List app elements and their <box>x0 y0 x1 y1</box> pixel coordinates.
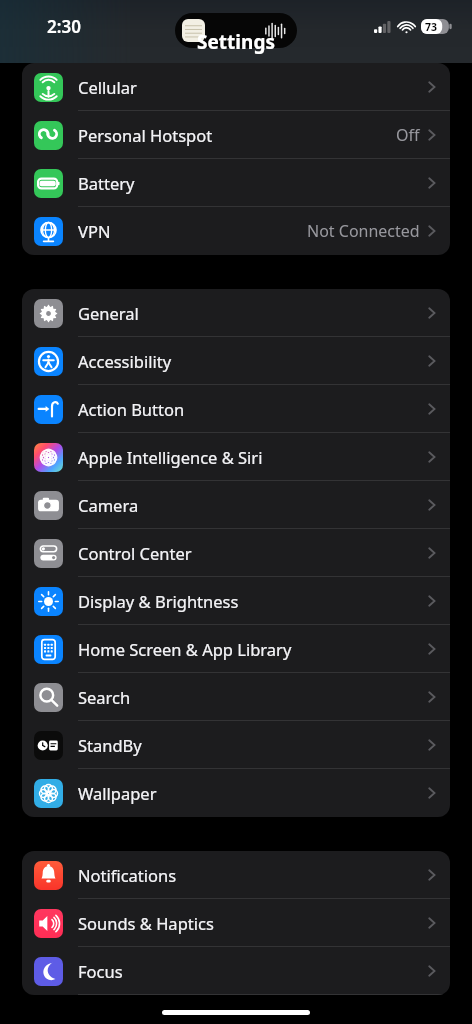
other: Open <box>428 80 436 94</box>
staticText: Camera <box>78 494 139 516</box>
other: Open <box>428 642 436 656</box>
button[interactable]: Cellular <box>22 63 450 111</box>
staticText: Notifications <box>78 864 177 886</box>
other: Open <box>428 402 436 416</box>
button[interactable]: Battery <box>22 159 450 207</box>
staticText: Settings <box>197 29 275 55</box>
button[interactable]: Focus <box>22 947 450 995</box>
button[interactable]: Personal Hotspot <box>22 111 450 159</box>
staticText: Display & Brightness <box>78 590 239 612</box>
staticText: Action Button <box>78 398 185 420</box>
staticText: Focus <box>78 960 123 982</box>
staticText: Wallpaper <box>78 782 157 804</box>
staticText: Off <box>396 124 420 146</box>
staticText: Home Screen & App Library <box>78 638 292 660</box>
other: Open <box>428 916 436 930</box>
staticText: StandBy <box>78 734 142 756</box>
other: Open <box>428 738 436 752</box>
button[interactable]: Accessibility <box>22 337 450 385</box>
other: Open <box>428 450 436 464</box>
staticText: 2:30 <box>47 15 81 38</box>
other: Open <box>428 594 436 608</box>
staticText: VPN <box>78 220 111 242</box>
staticText: Accessibility <box>78 350 172 372</box>
other: Open <box>428 868 436 882</box>
button[interactable]: Home Screen & App Library <box>22 625 450 673</box>
other: Open <box>428 128 436 142</box>
button[interactable]: StandBy <box>22 721 450 769</box>
staticText: Control Center <box>78 542 192 564</box>
other: Open <box>428 224 436 238</box>
staticText: Cellular <box>78 76 137 98</box>
staticText: Search <box>78 686 131 708</box>
button[interactable]: Camera <box>22 481 450 529</box>
other: Open <box>428 786 436 800</box>
other: Open <box>428 964 436 978</box>
button[interactable]: Search <box>22 673 450 721</box>
button[interactable]: Apple Intelligence & Siri <box>22 433 450 481</box>
button[interactable]: VPN <box>22 207 450 255</box>
staticText: 73 <box>425 20 438 34</box>
staticText: Not Connected <box>307 220 420 242</box>
button[interactable]: General <box>22 289 450 337</box>
staticText: General <box>78 302 139 324</box>
other: Open <box>428 546 436 560</box>
other: Open <box>428 176 436 190</box>
staticText: Apple Intelligence & Siri <box>78 446 263 468</box>
staticText: Battery <box>78 172 135 194</box>
other: Open <box>428 498 436 512</box>
button[interactable]: Display & Brightness <box>22 577 450 625</box>
button[interactable]: Notifications <box>22 851 450 899</box>
other: Open <box>428 354 436 368</box>
button[interactable]: Sounds & Haptics <box>22 899 450 947</box>
staticText: Personal Hotspot <box>78 124 213 146</box>
staticText: Sounds & Haptics <box>78 912 214 934</box>
button[interactable]: Action Button <box>22 385 450 433</box>
button[interactable]: Control Center <box>22 529 450 577</box>
other: Open <box>428 306 436 320</box>
button[interactable]: Wallpaper <box>22 769 450 817</box>
other: Open <box>428 690 436 704</box>
